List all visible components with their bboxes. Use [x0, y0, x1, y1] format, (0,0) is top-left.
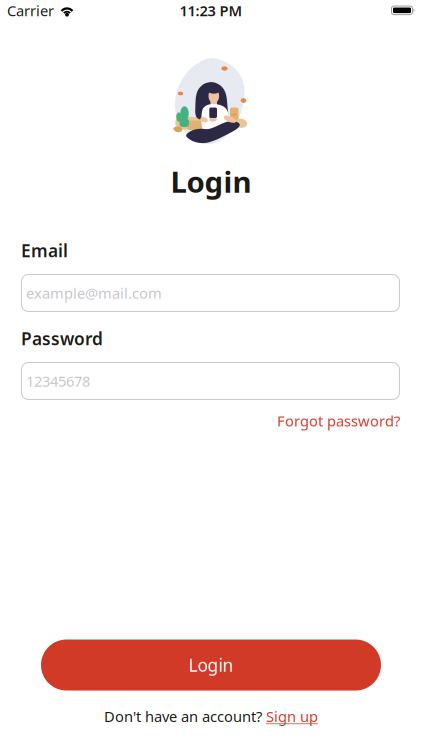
staticText: Don't have an account?: [104, 706, 262, 726]
secureTextField[interactable]: 12345678: [21, 362, 400, 400]
button[interactable]: Login: [41, 639, 381, 690]
staticText: Password: [21, 327, 103, 350]
staticText: Forgot password?: [277, 411, 400, 430]
button[interactable]: Forgot password?: [277, 411, 400, 430]
staticText: Login: [188, 653, 233, 676]
staticText: 12345678: [26, 371, 90, 391]
staticText: 11:23 PM: [179, 1, 242, 20]
staticText: example@mail.com: [26, 283, 162, 303]
staticText: Email: [21, 239, 68, 262]
button[interactable]: Sign up: [266, 706, 318, 726]
staticText: Carrier: [7, 1, 54, 20]
staticText: Sign up: [266, 706, 318, 726]
staticText: Login: [170, 162, 251, 201]
textField[interactable]: example@mail.com: [21, 274, 400, 312]
